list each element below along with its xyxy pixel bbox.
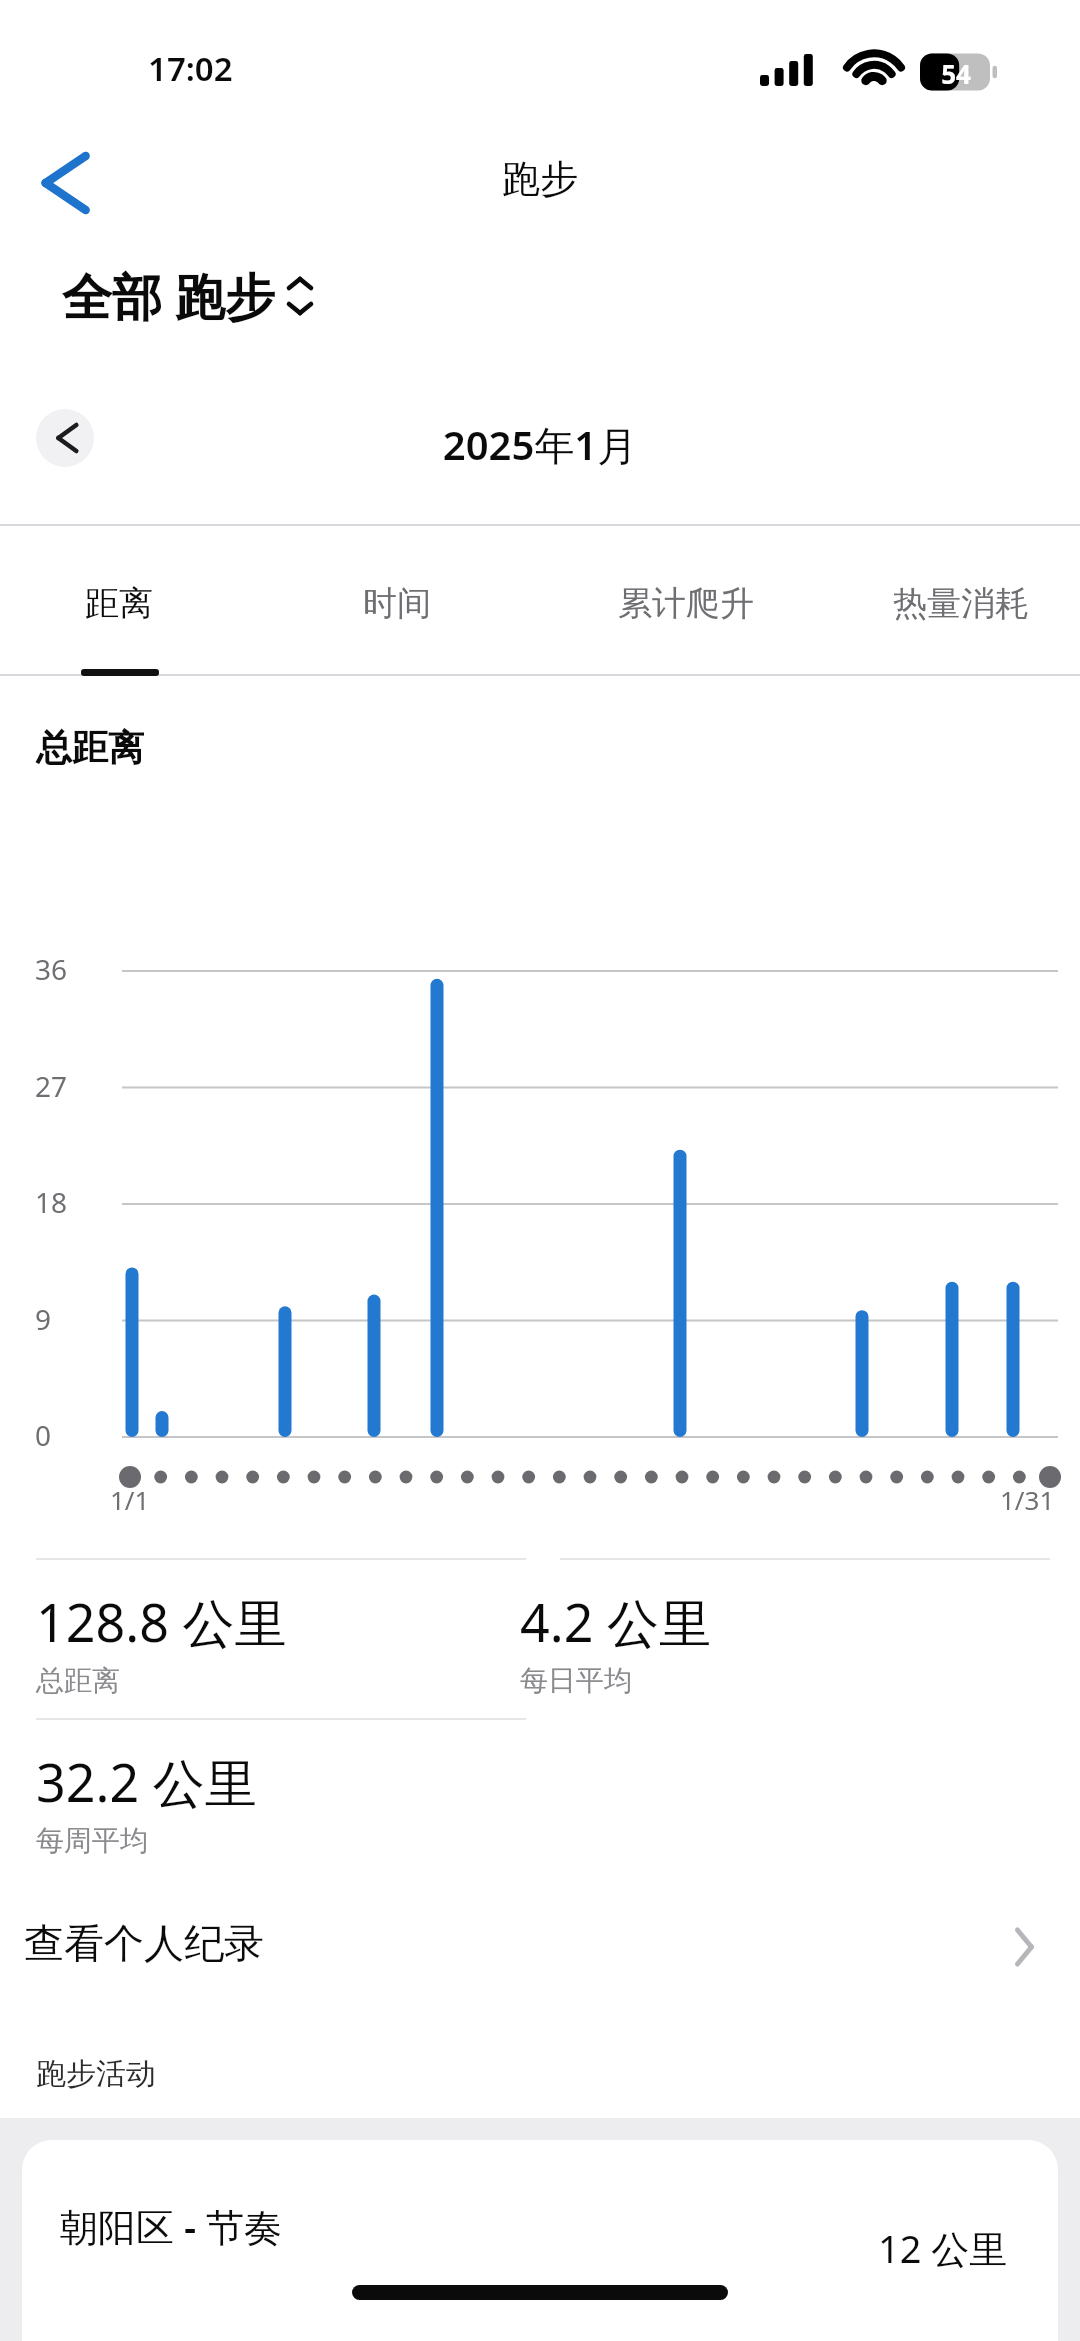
- staticText: 18: [34, 1183, 67, 1221]
- staticText: 总距离: [36, 1663, 120, 1698]
- staticText: 每周平均: [36, 1823, 148, 1858]
- staticText: 累计爬升: [618, 582, 754, 625]
- staticText: 36: [34, 950, 67, 988]
- button[interactable]: Back: [14, 140, 100, 226]
- staticText: 总距离: [36, 725, 144, 770]
- button[interactable]: 查看个人纪录: [0, 1880, 1080, 2016]
- button[interactable]: 时间: [342, 534, 452, 672]
- button[interactable]: Previous month: [36, 409, 94, 467]
- staticText: 128.8 公里: [36, 1586, 287, 1657]
- staticText: 1/31: [1000, 1482, 1055, 1517]
- button[interactable]: 全部 跑步: [62, 262, 317, 330]
- staticText: 跑步活动: [36, 2055, 156, 2093]
- staticText: 17:02: [148, 46, 233, 91]
- button[interactable]: 距离: [64, 534, 174, 672]
- staticText: 跑步: [0, 155, 1080, 203]
- button[interactable]: 朝阳区 - 节奏: [22, 2140, 1058, 2341]
- staticText: 0: [34, 1416, 51, 1454]
- staticText: 54: [932, 56, 980, 91]
- staticText: 查看个人纪录: [24, 1918, 264, 1968]
- staticText: 朝阳区 - 节奏: [60, 2200, 282, 2252]
- staticText: 4.2 公里: [520, 1586, 711, 1657]
- button[interactable]: 热量消耗: [861, 534, 1061, 672]
- staticText: 热量消耗: [893, 582, 1029, 625]
- staticText: 2025年1月: [0, 417, 1080, 472]
- staticText: 27: [34, 1067, 67, 1105]
- staticText: 时间: [363, 582, 431, 625]
- staticText: 距离: [85, 582, 153, 625]
- button[interactable]: 累计爬升: [586, 534, 786, 672]
- staticText: 12 公里: [878, 2222, 1008, 2274]
- staticText: 1/1: [110, 1482, 150, 1517]
- staticText: 9: [34, 1300, 51, 1338]
- staticText: 32.2 公里: [36, 1746, 257, 1817]
- staticText: 全部 跑步: [62, 262, 275, 330]
- staticText: 每日平均: [520, 1663, 632, 1698]
